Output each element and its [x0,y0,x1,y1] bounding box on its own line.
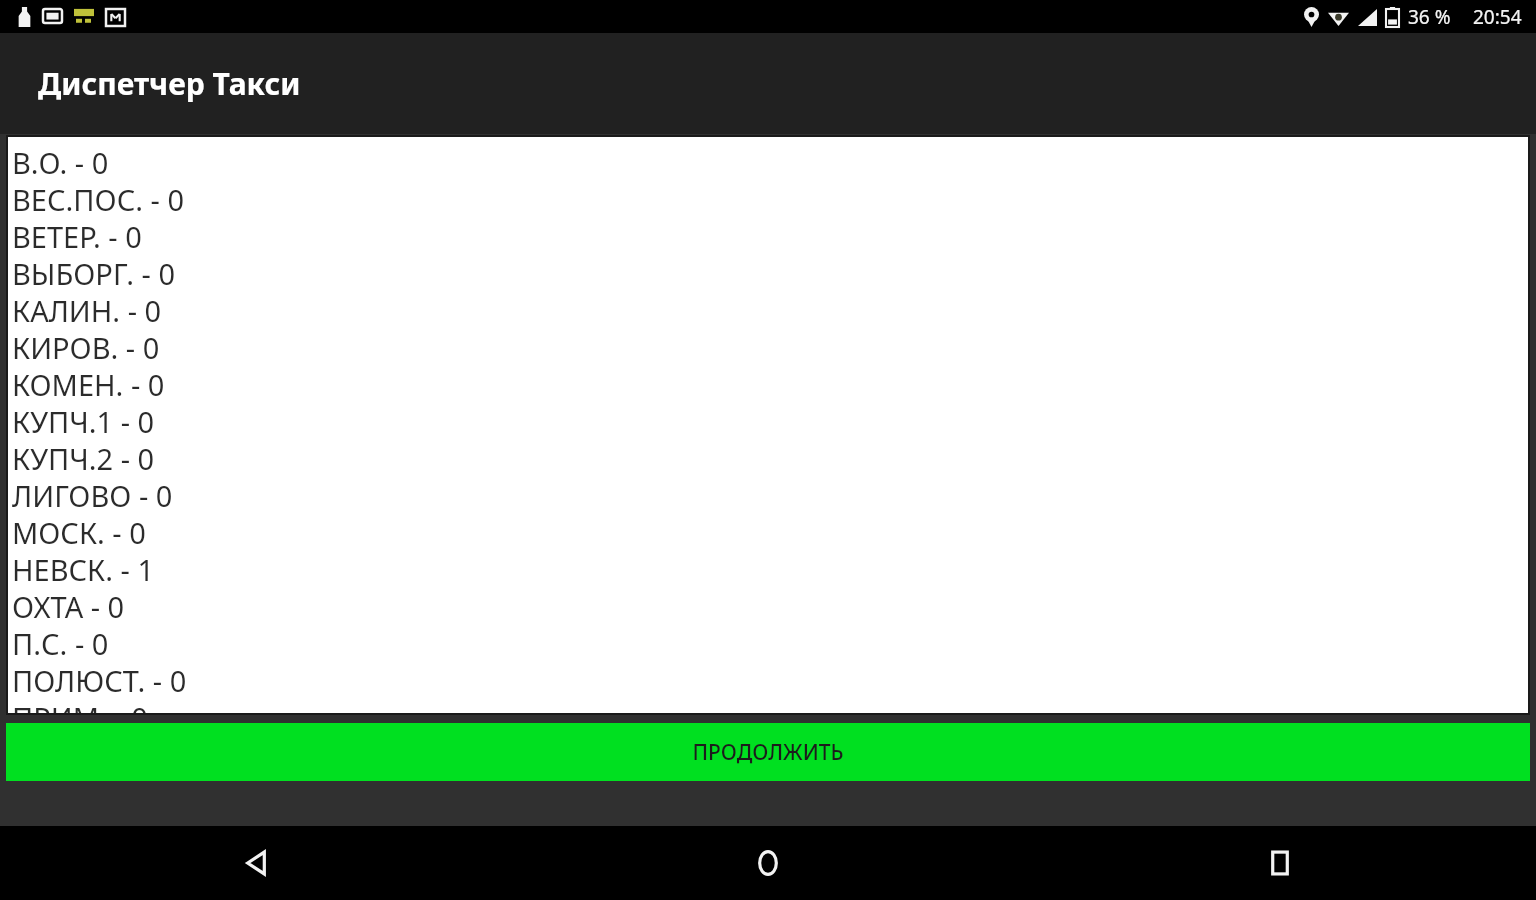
button[interactable]: В.О. - 0 [8,143,1528,180]
button[interactable]: Home [512,826,1024,900]
button[interactable]: ВЫБОРГ. - 0 [8,254,1528,291]
button[interactable]: КАЛИН. - 0 [8,291,1528,328]
button[interactable]: П.С. - 0 [8,624,1528,661]
button[interactable]: КОМЕН. - 0 [8,365,1528,402]
staticText: ПРОДОЛЖИТЬ [692,738,844,767]
button[interactable]: ВЕТЕР. - 0 [8,217,1528,254]
staticText: КОМЕН. - 0 [12,365,165,402]
staticText: КУПЧ.1 - 0 [12,402,155,439]
button[interactable]: ОХТА - 0 [8,587,1528,624]
button[interactable]: ПРОДОЛЖИТЬ [6,723,1530,781]
staticText: ПОЛЮСТ. - 0 [12,661,187,698]
staticText: ЛИГОВО - 0 [12,476,173,513]
button[interactable]: ЛИГОВО - 0 [8,476,1528,513]
staticText: Диспетчер Такси [38,63,301,104]
staticText: В.О. - 0 [12,143,109,180]
staticText: ПРИМ. - 0 [12,698,148,713]
button[interactable]: НЕВСК. - 1 [8,550,1528,587]
staticText: 20:54 [1473,4,1522,30]
button[interactable]: Recent apps [1024,826,1536,900]
button[interactable]: КИРОВ. - 0 [8,328,1528,365]
staticText: КИРОВ. - 0 [12,328,160,365]
button[interactable]: ВЕС.ПОС. - 0 [8,180,1528,217]
staticText: КАЛИН. - 0 [12,291,162,328]
button[interactable]: ПОЛЮСТ. - 0 [8,661,1528,698]
staticText: ВЕС.ПОС. - 0 [12,180,184,217]
staticText: 36 % [1408,4,1451,30]
staticText: ОХТА - 0 [12,587,125,624]
staticText: ВЫБОРГ. - 0 [12,254,175,291]
button[interactable]: ПРИМ. - 0 [8,698,1528,713]
button[interactable]: Back [0,826,512,900]
staticText: МОСК. - 0 [12,513,146,550]
button[interactable]: МОСК. - 0 [8,513,1528,550]
staticText: НЕВСК. - 1 [12,550,154,587]
button[interactable]: КУПЧ.2 - 0 [8,439,1528,476]
staticText: КУПЧ.2 - 0 [12,439,155,476]
staticText: П.С. - 0 [12,624,109,661]
staticText: ВЕТЕР. - 0 [12,217,142,254]
button[interactable]: КУПЧ.1 - 0 [8,402,1528,439]
